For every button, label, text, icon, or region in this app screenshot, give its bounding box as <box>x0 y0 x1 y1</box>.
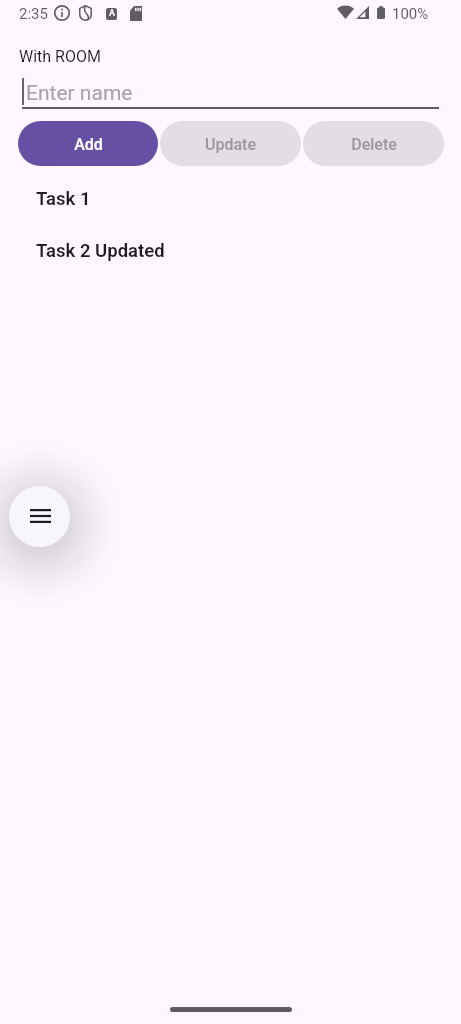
button[interactable]: Update <box>160 121 301 166</box>
staticText: A <box>109 8 115 19</box>
staticText: Update <box>205 135 256 154</box>
staticText: Delete <box>351 135 397 154</box>
staticText: 2:35 <box>19 5 48 23</box>
button[interactable]: Task 1 <box>0 173 461 225</box>
button[interactable]: Add <box>18 121 158 166</box>
button[interactable]: Task 2 Updated <box>0 225 461 277</box>
staticText: Add <box>74 135 103 154</box>
staticText: Enter name <box>26 81 133 106</box>
staticText: With ROOM <box>19 47 101 66</box>
staticText: 100% <box>392 5 429 23</box>
staticText: Task 2 Updated <box>36 240 165 262</box>
staticText: Task 1 <box>36 188 91 210</box>
button[interactable]: Delete <box>303 121 444 166</box>
button[interactable]: Open menu <box>9 486 70 547</box>
button[interactable]: Enter name <box>22 76 439 110</box>
